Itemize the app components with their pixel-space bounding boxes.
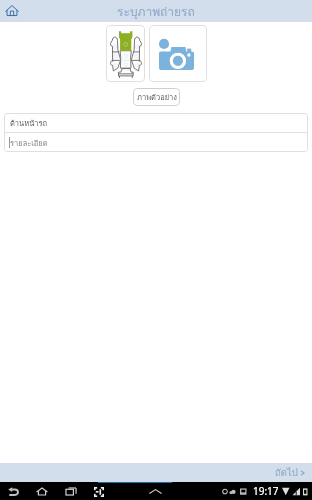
button[interactable]: Home: [0, 0, 24, 22]
button[interactable]: ด้านหน้ารถ: [4, 113, 308, 132]
staticText: รายละเอียด: [10, 137, 48, 149]
button[interactable]: ภาพตัวอย่าง: [133, 88, 180, 106]
button[interactable]: Show navigation: [147, 485, 163, 498]
button[interactable]: Switch input method: [92, 485, 105, 498]
staticText: ภาพตัวอย่าง: [137, 91, 177, 103]
staticText: 19:17: [253, 484, 279, 498]
button[interactable]: ถัดไป: [268, 463, 312, 482]
button[interactable]: Back: [7, 485, 20, 498]
button[interactable]: รายละเอียด: [4, 133, 308, 152]
staticText: ถัดไป: [275, 465, 298, 480]
staticText: ด้านหน้ารถ: [10, 117, 48, 129]
button[interactable]: Home: [34, 484, 49, 499]
button[interactable]: Recent apps: [63, 484, 78, 499]
button[interactable]: Car damage diagram: [106, 25, 145, 82]
staticText: ระบุภาพถ่ายรถ: [117, 2, 195, 21]
button[interactable]: Take photo: [149, 25, 207, 82]
